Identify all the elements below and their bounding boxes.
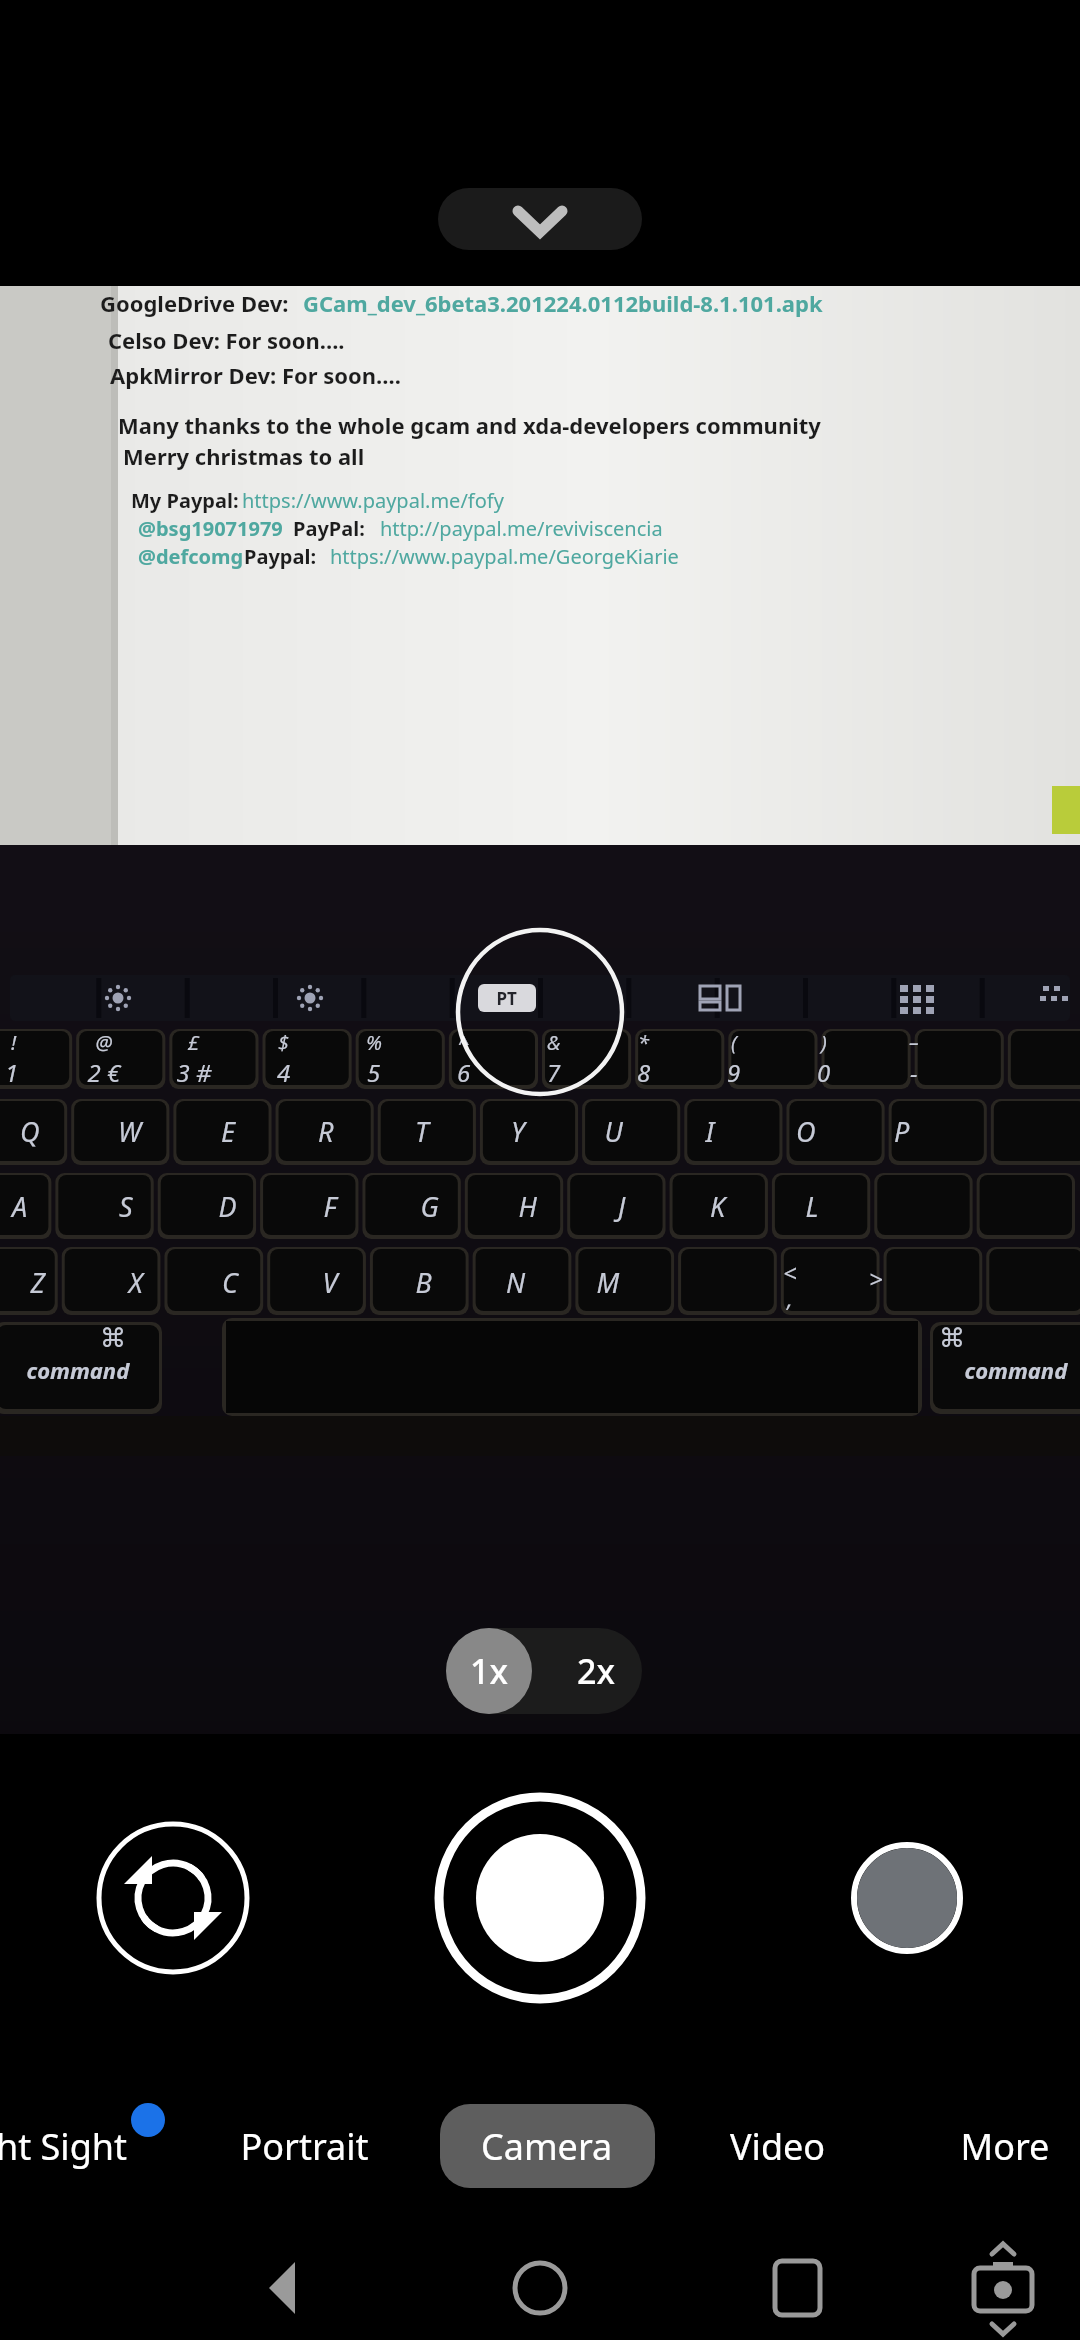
button[interactable]: Photo gallery [848,1839,966,1957]
button[interactable]: Video [690,2098,876,2194]
button[interactable]: Home [455,2244,625,2336]
button[interactable]: Take photo [429,1787,651,2009]
button[interactable]: More [910,2098,1080,2194]
button[interactable]: 2x zoom [544,1628,642,1714]
button[interactable]: Recent apps [712,2244,882,2336]
button[interactable]: 1x zoom [446,1628,544,1714]
button[interactable]: Portrait [200,2098,412,2194]
button[interactable]: Camera [440,2104,655,2188]
button[interactable]: Collapse settings [438,188,642,250]
button[interactable]: Back [196,2244,366,2336]
button[interactable]: Switch camera [99,1824,247,1972]
button[interactable]: Night Sight [0,2098,192,2194]
button[interactable]: Rotate screen [943,2244,1065,2336]
